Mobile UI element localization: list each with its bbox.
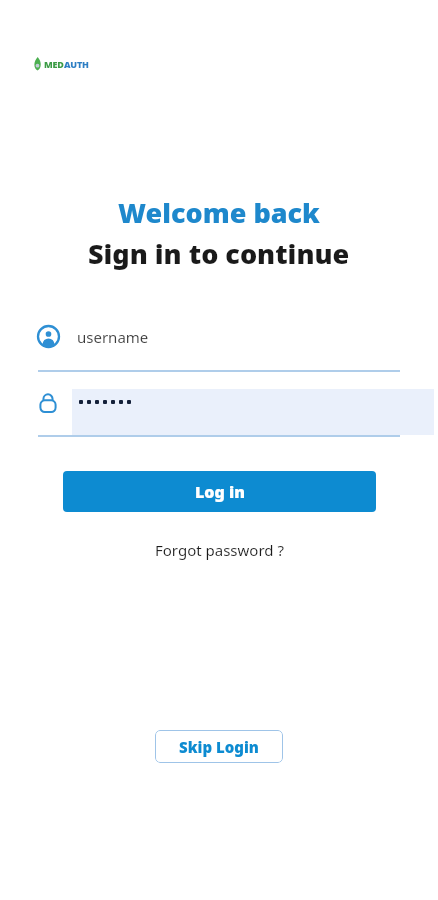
staticText: Sign in to continue [88,235,350,272]
button[interactable]: username [38,326,400,372]
staticText: AUTH [64,58,89,70]
button[interactable]: Log in [63,471,376,512]
staticText: MED [44,58,64,70]
staticText: Forgot password ? [155,540,284,560]
staticText: Welcome back [118,194,320,231]
other: MedAuth logo [33,57,89,71]
staticText: username [77,327,149,347]
staticText: Skip Login [179,737,259,757]
button[interactable]: Skip Login [155,730,283,763]
button[interactable] [38,389,400,437]
button[interactable]: Forgot password ? [149,537,290,563]
staticText: Log in [195,481,245,503]
